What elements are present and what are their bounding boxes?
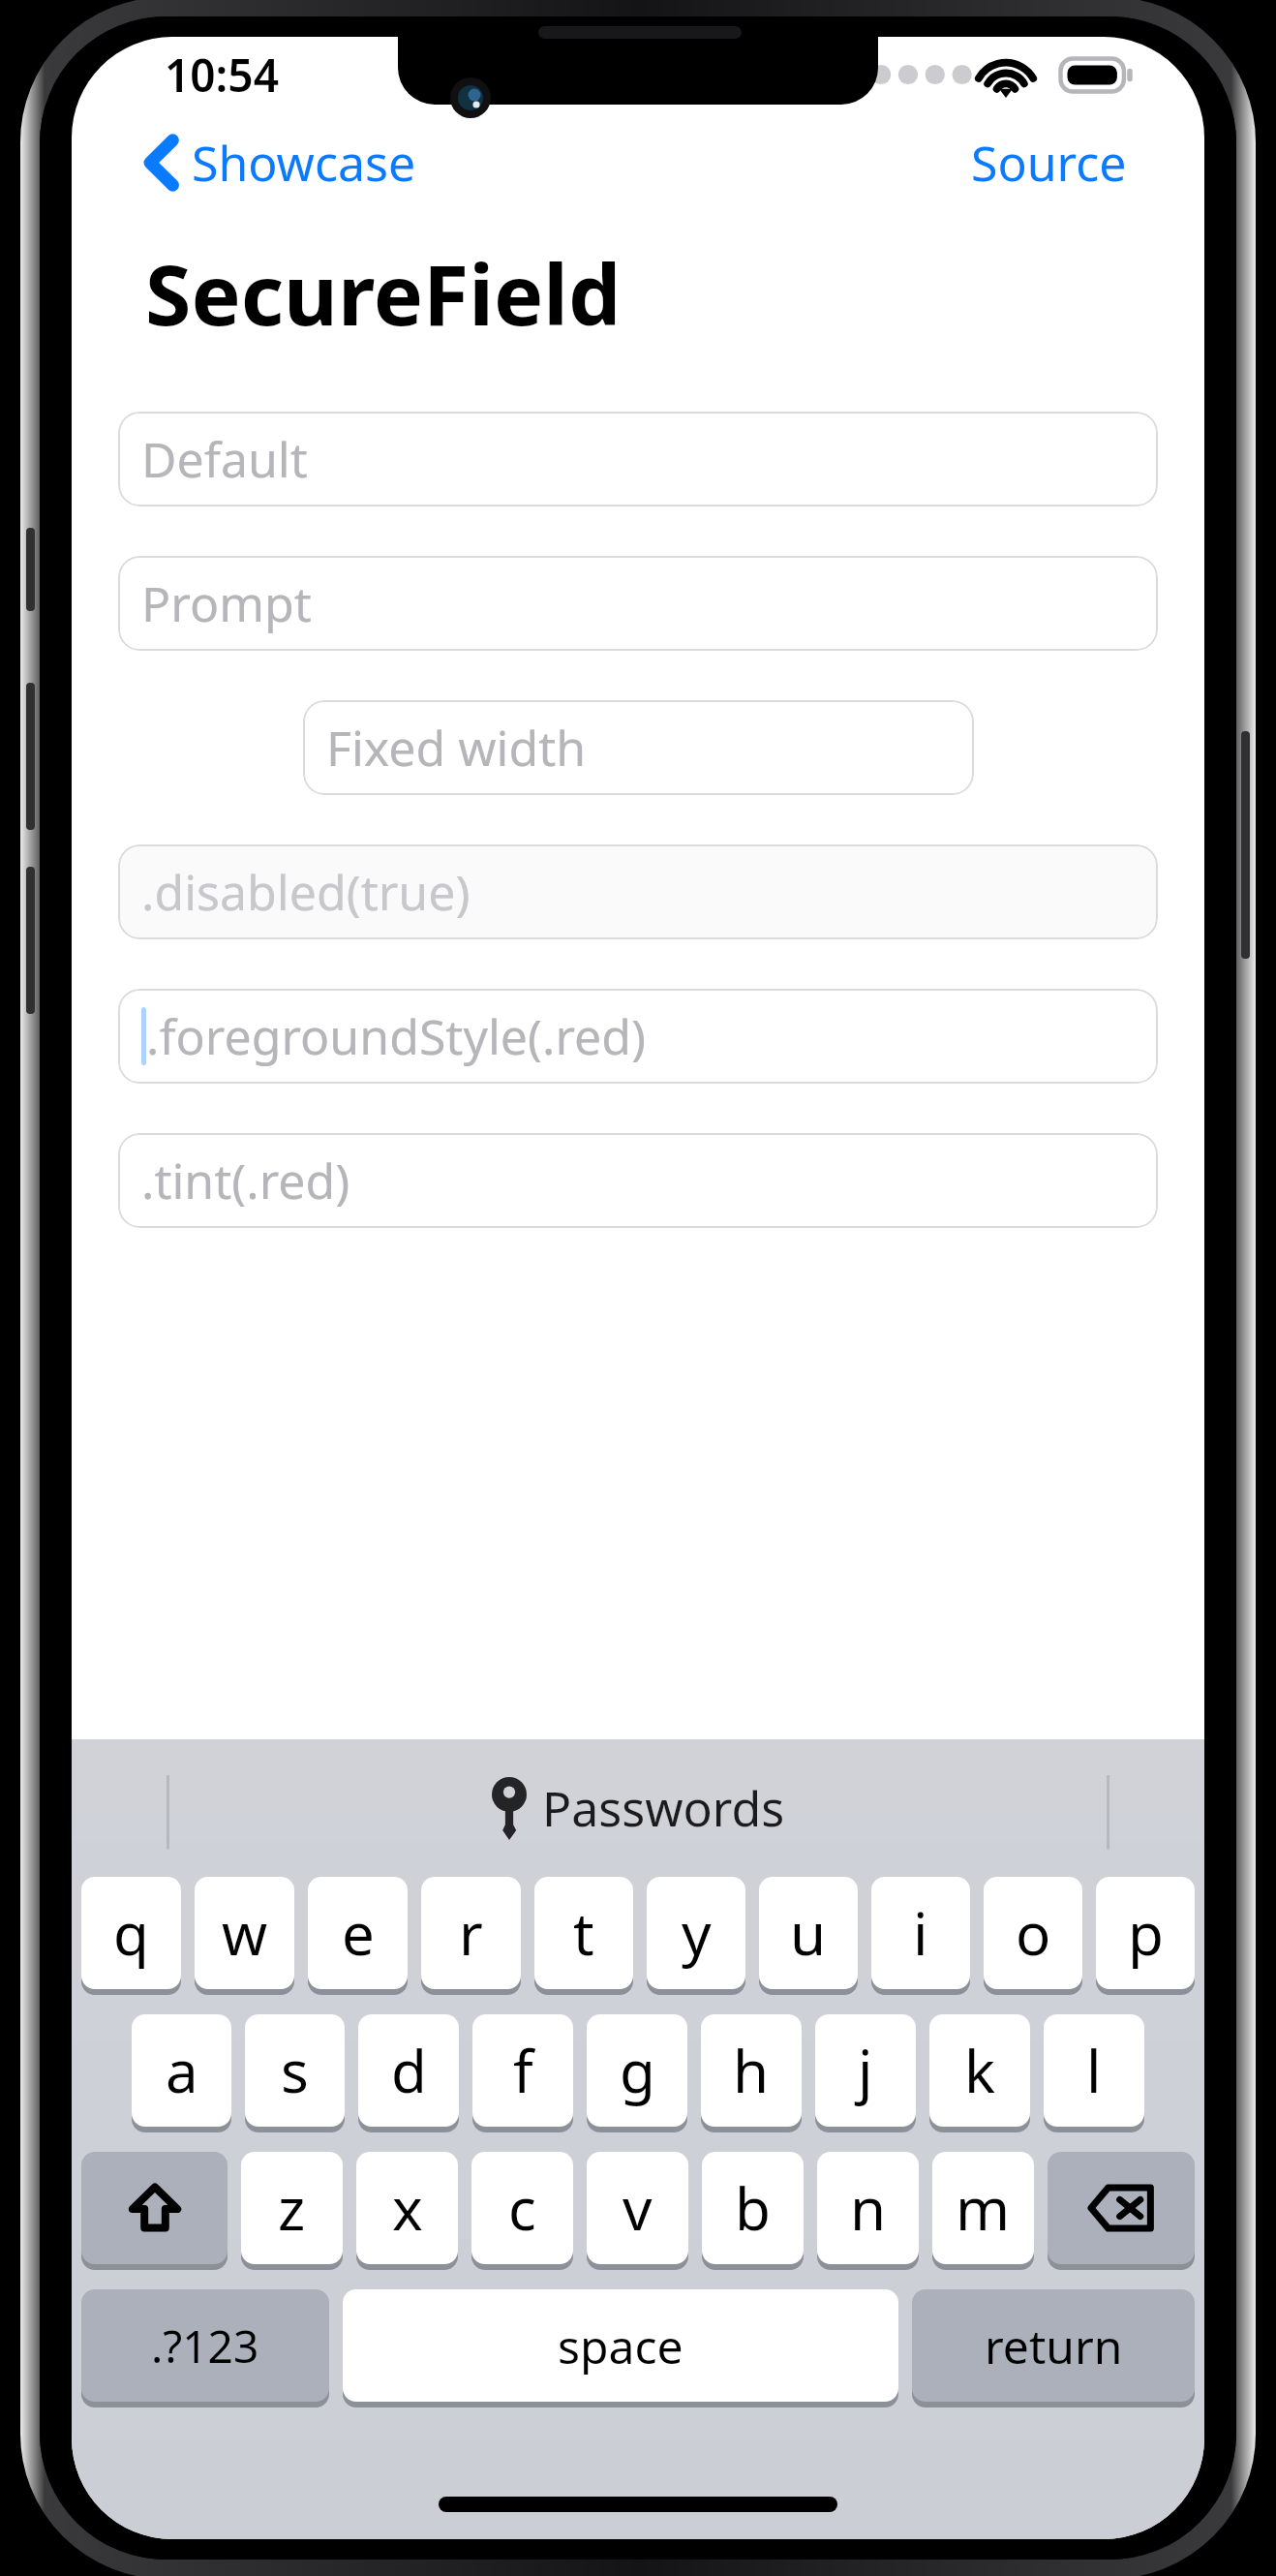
button[interactable]: r bbox=[421, 1877, 521, 1989]
staticText: .disabled(true) bbox=[141, 859, 471, 925]
staticText: space bbox=[558, 2315, 684, 2377]
staticText: s bbox=[281, 2031, 309, 2110]
staticText: SecureField bbox=[145, 236, 622, 350]
staticText: e bbox=[342, 1893, 375, 1973]
staticText: o bbox=[1016, 1893, 1051, 1973]
staticText: 10:54 bbox=[165, 45, 279, 106]
button[interactable]: p bbox=[1096, 1877, 1195, 1989]
staticText: Default bbox=[141, 426, 308, 492]
button[interactable]: return bbox=[912, 2289, 1195, 2402]
staticText: .?123 bbox=[151, 2315, 259, 2377]
staticText: i bbox=[913, 1893, 928, 1973]
button[interactable]: o bbox=[984, 1877, 1082, 1989]
staticText: j bbox=[858, 2031, 873, 2110]
staticText: l bbox=[1086, 2031, 1102, 2110]
staticText: return bbox=[985, 2315, 1123, 2377]
staticText: c bbox=[508, 2168, 536, 2248]
button[interactable]: q bbox=[81, 1877, 181, 1989]
button[interactable]: a bbox=[132, 2014, 231, 2127]
staticText: Prompt bbox=[141, 570, 312, 636]
staticText: t bbox=[573, 1893, 594, 1973]
button[interactable]: s bbox=[245, 2014, 345, 2127]
button[interactable]: c bbox=[471, 2152, 573, 2264]
staticText: .tint(.red) bbox=[141, 1148, 350, 1213]
button[interactable]: v bbox=[587, 2152, 688, 2264]
button[interactable]: Prompt bbox=[118, 556, 1158, 651]
staticText: k bbox=[964, 2031, 996, 2110]
button[interactable]: j bbox=[815, 2014, 916, 2127]
staticText: w bbox=[222, 1893, 268, 1973]
staticText: r bbox=[459, 1893, 483, 1973]
button[interactable]: z bbox=[241, 2152, 343, 2264]
button[interactable]: d bbox=[358, 2014, 459, 2127]
button[interactable]: Shift bbox=[81, 2152, 228, 2264]
button[interactable]: u bbox=[759, 1877, 858, 1989]
staticText: .foregroundStyle(.red) bbox=[146, 1003, 646, 1069]
button[interactable]: Default bbox=[118, 412, 1158, 506]
staticText: m bbox=[956, 2168, 1011, 2248]
staticText: Showcase bbox=[192, 130, 416, 196]
staticText: x bbox=[392, 2168, 423, 2248]
button[interactable]: w bbox=[195, 1877, 294, 1989]
staticText: Passwords bbox=[542, 1775, 785, 1841]
staticText: n bbox=[850, 2168, 887, 2248]
staticText: a bbox=[166, 2031, 198, 2110]
staticText: Source bbox=[971, 130, 1127, 196]
button[interactable]: x bbox=[356, 2152, 458, 2264]
staticText: Fixed width bbox=[326, 715, 587, 781]
button[interactable]: Fixed width bbox=[303, 700, 974, 795]
button[interactable]: g bbox=[587, 2014, 687, 2127]
button[interactable]: .tint(.red) bbox=[118, 1133, 1158, 1228]
staticText: f bbox=[513, 2031, 533, 2110]
button[interactable]: y bbox=[647, 1877, 745, 1989]
button[interactable]: Showcase bbox=[136, 116, 428, 209]
button[interactable]: .?123 bbox=[81, 2289, 329, 2402]
button[interactable]: k bbox=[929, 2014, 1030, 2127]
staticText: g bbox=[620, 2031, 655, 2110]
staticText: v bbox=[623, 2168, 653, 2248]
staticText: b bbox=[735, 2168, 771, 2248]
button[interactable]: Backspace bbox=[1048, 2152, 1195, 2264]
button[interactable]: Source bbox=[959, 114, 1139, 211]
button[interactable]: t bbox=[534, 1877, 633, 1989]
staticText: q bbox=[113, 1893, 149, 1973]
button[interactable]: n bbox=[817, 2152, 919, 2264]
button[interactable]: h bbox=[701, 2014, 802, 2127]
staticText: p bbox=[1128, 1893, 1164, 1973]
button[interactable]: .foregroundStyle(.red) bbox=[118, 989, 1158, 1084]
staticText: u bbox=[790, 1893, 827, 1973]
button[interactable]: space bbox=[343, 2289, 898, 2402]
button[interactable]: .disabled(true) bbox=[118, 844, 1158, 939]
button[interactable]: m bbox=[932, 2152, 1034, 2264]
button[interactable]: l bbox=[1044, 2014, 1144, 2127]
staticText: h bbox=[733, 2031, 770, 2110]
staticText: y bbox=[682, 1893, 712, 1973]
button[interactable]: f bbox=[472, 2014, 573, 2127]
staticText: d bbox=[391, 2031, 427, 2110]
button[interactable]: b bbox=[702, 2152, 804, 2264]
button[interactable]: e bbox=[308, 1877, 408, 1989]
staticText: z bbox=[278, 2168, 306, 2248]
button[interactable]: i bbox=[871, 1877, 970, 1989]
button[interactable]: Passwords bbox=[484, 1767, 793, 1849]
